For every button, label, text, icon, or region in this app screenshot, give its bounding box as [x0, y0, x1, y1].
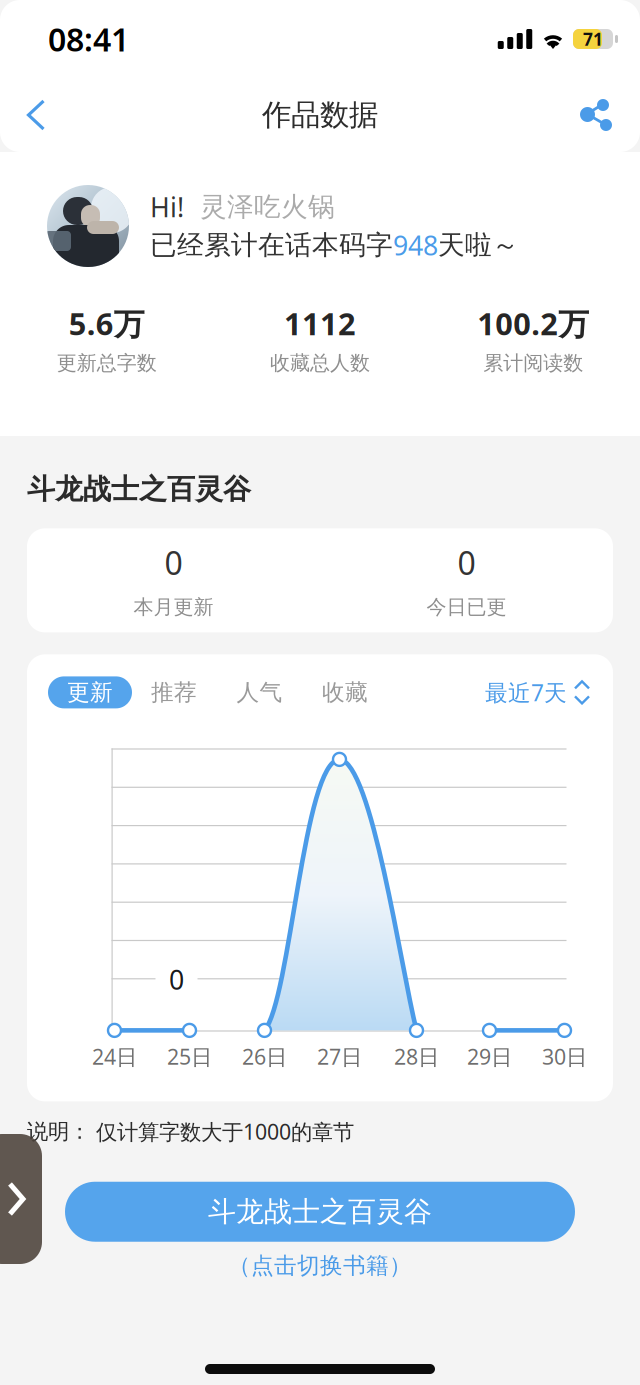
- staticText: （点击切换书籍）: [228, 1252, 412, 1280]
- staticText: 更新总字数: [57, 351, 157, 375]
- staticText: 推荐: [151, 678, 197, 706]
- staticText: 作品数据: [262, 97, 378, 133]
- staticText: 100.2万: [477, 303, 589, 344]
- staticText: 本月更新: [133, 595, 213, 619]
- staticText: 25日: [167, 1042, 212, 1071]
- staticText: Hi!: [150, 189, 184, 224]
- staticText: 斗龙战士之百灵谷: [27, 472, 251, 506]
- staticText: 斗龙战士之百灵谷: [208, 1194, 432, 1229]
- button[interactable]: 人气: [216, 676, 303, 708]
- staticText: 最近7天: [485, 677, 567, 707]
- staticText: 948: [393, 227, 438, 263]
- staticText: 收藏: [322, 678, 368, 706]
- button[interactable]: 收藏: [303, 676, 387, 708]
- button[interactable]: 更新: [48, 676, 132, 708]
- staticText: 更新: [67, 678, 113, 706]
- button[interactable]: 推荐: [132, 676, 216, 708]
- staticText: 收藏总人数: [270, 351, 370, 375]
- staticText: 26日: [242, 1042, 287, 1071]
- button[interactable]: Back: [0, 79, 72, 151]
- staticText: 29日: [467, 1042, 512, 1071]
- staticText: 1112: [284, 303, 356, 344]
- button[interactable]: Share: [560, 79, 632, 151]
- staticText: 27日: [317, 1042, 362, 1071]
- staticText: 28日: [394, 1042, 439, 1071]
- staticText: 今日已更: [426, 595, 506, 619]
- button[interactable]: Open side drawer: [0, 1134, 42, 1264]
- staticText: 已经累计在话本码字: [150, 229, 393, 262]
- staticText: 灵泽吃火锅: [184, 190, 335, 223]
- button[interactable]: 斗龙战士之百灵谷: [65, 1182, 575, 1242]
- staticText: 0: [457, 541, 475, 584]
- staticText: 71: [583, 27, 603, 50]
- button[interactable]: 最近7天: [485, 676, 591, 708]
- staticText: 天啦～: [438, 229, 519, 262]
- staticText: 5.6万: [69, 303, 145, 344]
- staticText: 30日: [542, 1042, 587, 1071]
- staticText: 说明：: [27, 1118, 90, 1145]
- staticText: 08:41: [48, 18, 129, 60]
- staticText: 24日: [92, 1042, 137, 1071]
- staticText: 仅计算字数大于1000的章节: [90, 1117, 354, 1146]
- staticText: 0: [164, 541, 182, 584]
- staticText: 累计阅读数: [483, 351, 583, 375]
- staticText: 人气: [236, 678, 282, 706]
- button[interactable]: （点击切换书籍）: [228, 1246, 412, 1286]
- staticText: 0: [169, 962, 184, 997]
